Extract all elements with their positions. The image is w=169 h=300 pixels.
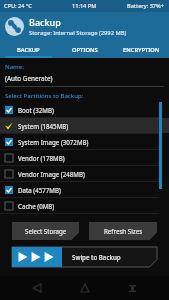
- staticText: Name:: [5, 63, 24, 71]
- button[interactable]: Recents: [121, 277, 143, 299]
- staticText: Swipe to Backup: [72, 253, 121, 261]
- button[interactable]: Vendor Image (248MB): [0, 166, 169, 181]
- button[interactable]: (Auto Generate): [5, 74, 164, 87]
- staticText: System Image (3072MB): [18, 138, 89, 146]
- staticText: Select Storage: [25, 227, 67, 235]
- button[interactable]: ENCRYPTION: [113, 41, 169, 58]
- button[interactable]: BACKUP: [0, 41, 57, 58]
- button[interactable]: Cache (0MB): [0, 198, 169, 213]
- button[interactable]: Vendor (178MB): [0, 150, 169, 165]
- button[interactable]: OPTIONS: [57, 41, 113, 58]
- staticText: Cache (0MB): [18, 202, 55, 210]
- button[interactable]: Data (4577MB): [0, 182, 169, 197]
- staticText: Backup: [29, 16, 61, 28]
- staticText: Select Partitions to Backup:: [5, 92, 84, 100]
- button[interactable]: Refresh Sizes: [89, 222, 157, 240]
- button[interactable]: Back: [26, 277, 48, 299]
- staticText: System (1845MB): [18, 122, 69, 130]
- staticText: Battery: 37%+: [127, 2, 165, 10]
- staticText: OPTIONS: [72, 46, 98, 54]
- button[interactable]: System Image (3072MB): [0, 134, 169, 149]
- button[interactable]: Boot (32MB): [0, 102, 169, 117]
- button[interactable]: Select Storage: [12, 222, 79, 240]
- staticText: Data (4577MB): [18, 186, 61, 194]
- staticText: ENCRYPTION: [123, 46, 160, 54]
- staticText: 11:14 PM: [72, 2, 97, 10]
- staticText: Vendor (178MB): [18, 154, 65, 162]
- button[interactable]: System (1845MB): [0, 118, 169, 133]
- staticText: Vendor Image (248MB): [18, 170, 85, 178]
- staticText: Refresh Sizes: [104, 227, 143, 235]
- staticText: (Auto Generate): [5, 74, 53, 83]
- button[interactable]: Swipe to Backup: [12, 247, 157, 267]
- staticText: CPU: 24 °C: [4, 2, 32, 10]
- staticText: Storage: Internal Storage (2992 MB): [29, 29, 127, 37]
- staticText: BACKUP: [17, 46, 40, 54]
- button[interactable]: Home: [74, 277, 96, 299]
- staticText: Boot (32MB): [18, 106, 54, 114]
